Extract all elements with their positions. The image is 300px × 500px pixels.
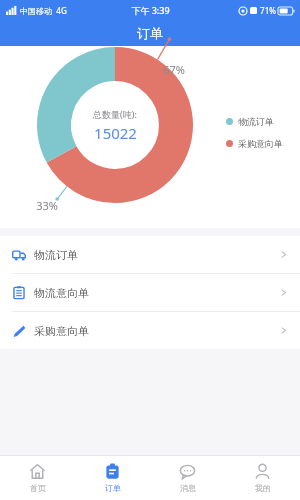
staticText: 消息 <box>180 483 196 493</box>
staticText: 33% <box>36 198 58 213</box>
staticText: 4G <box>56 5 67 16</box>
button[interactable]: 我的 <box>225 456 300 500</box>
staticText: 下午 3:39 <box>131 4 170 16</box>
button[interactable]: 物流意向单 <box>0 274 300 311</box>
staticText: 总数量(吨): <box>93 108 137 120</box>
staticText: 67% <box>163 62 185 77</box>
button[interactable]: 首页 <box>0 456 75 500</box>
staticText: 物流订单 <box>238 116 274 127</box>
staticText: 物流订单 <box>34 248 78 262</box>
staticText: 首页 <box>30 483 46 493</box>
button[interactable]: 订单 <box>75 456 150 500</box>
button[interactable]: 采购意向单 <box>0 312 300 349</box>
staticText: 物流意向单 <box>34 286 89 300</box>
staticText: 71% <box>260 5 276 16</box>
staticText: 我的 <box>255 483 271 493</box>
staticText: 订单 <box>105 483 121 493</box>
staticText: 采购意向单 <box>34 324 89 338</box>
staticText: 15022 <box>94 123 137 143</box>
staticText: 中国移动 <box>20 6 52 16</box>
button[interactable]: 物流订单 <box>0 236 300 273</box>
button[interactable]: 消息 <box>150 456 225 500</box>
staticText: 订单 <box>137 25 163 41</box>
staticText: 采购意向单 <box>238 138 283 149</box>
